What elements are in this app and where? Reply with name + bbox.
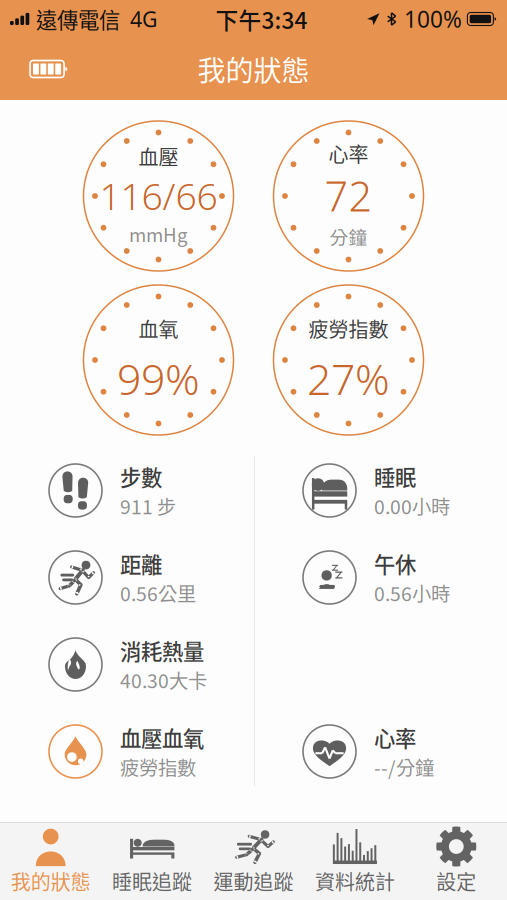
- staticText: 心率: [328, 139, 368, 168]
- staticText: 距離: [120, 548, 162, 579]
- staticText: 運動追蹤: [213, 866, 293, 895]
- staticText: 72: [324, 168, 372, 223]
- staticText: 我的狀態: [197, 49, 309, 89]
- staticText: 血壓血氧: [120, 722, 204, 753]
- staticText: 疲勞指數: [308, 314, 388, 343]
- staticText: 消耗熱量: [120, 635, 204, 666]
- staticText: 4G: [130, 5, 158, 33]
- button[interactable]: 睡眠: [303, 447, 499, 534]
- staticText: 0.00小時: [374, 492, 450, 520]
- staticText: 資料統計: [315, 866, 395, 895]
- staticText: 116/66: [99, 171, 217, 220]
- staticText: 40.30大卡: [120, 666, 207, 694]
- staticText: 血壓: [138, 142, 178, 171]
- button[interactable]: 步數: [49, 447, 245, 534]
- staticText: 心率: [374, 722, 416, 753]
- button[interactable]: 睡眠追蹤: [101, 823, 203, 900]
- staticText: 設定: [436, 866, 476, 895]
- staticText: 99%: [117, 350, 200, 407]
- staticText: 我的狀態: [11, 866, 91, 895]
- staticText: 血氧: [138, 314, 178, 343]
- staticText: 下午3:34: [215, 3, 307, 35]
- button[interactable]: 我的狀態: [0, 823, 101, 900]
- staticText: 睡眠追蹤: [112, 866, 192, 895]
- button[interactable]: 消耗熱量: [49, 621, 245, 708]
- staticText: 午休: [374, 548, 416, 579]
- staticText: 27%: [307, 350, 390, 407]
- staticText: 0.56公里: [120, 579, 196, 607]
- staticText: 911 步: [120, 492, 176, 520]
- button[interactable]: 心率: [303, 708, 499, 795]
- button[interactable]: Device battery: [16, 48, 77, 89]
- staticText: 睡眠: [374, 461, 416, 492]
- button[interactable]: 午休: [303, 534, 499, 621]
- staticText: 分鐘: [329, 223, 367, 250]
- button[interactable]: 血壓血氧: [49, 708, 245, 795]
- staticText: --/分鐘: [374, 753, 434, 781]
- staticText: mmHg: [129, 220, 188, 247]
- button[interactable]: 資料統計: [304, 823, 406, 900]
- staticText: 步數: [120, 461, 162, 492]
- staticText: 100%: [404, 4, 462, 34]
- staticText: 遠傳電信: [36, 4, 120, 34]
- button[interactable]: 設定: [406, 823, 507, 900]
- button[interactable]: 距離: [49, 534, 245, 621]
- staticText: 0.56小時: [374, 579, 450, 607]
- button[interactable]: 運動追蹤: [203, 823, 304, 900]
- staticText: 疲勞指數: [120, 753, 196, 781]
